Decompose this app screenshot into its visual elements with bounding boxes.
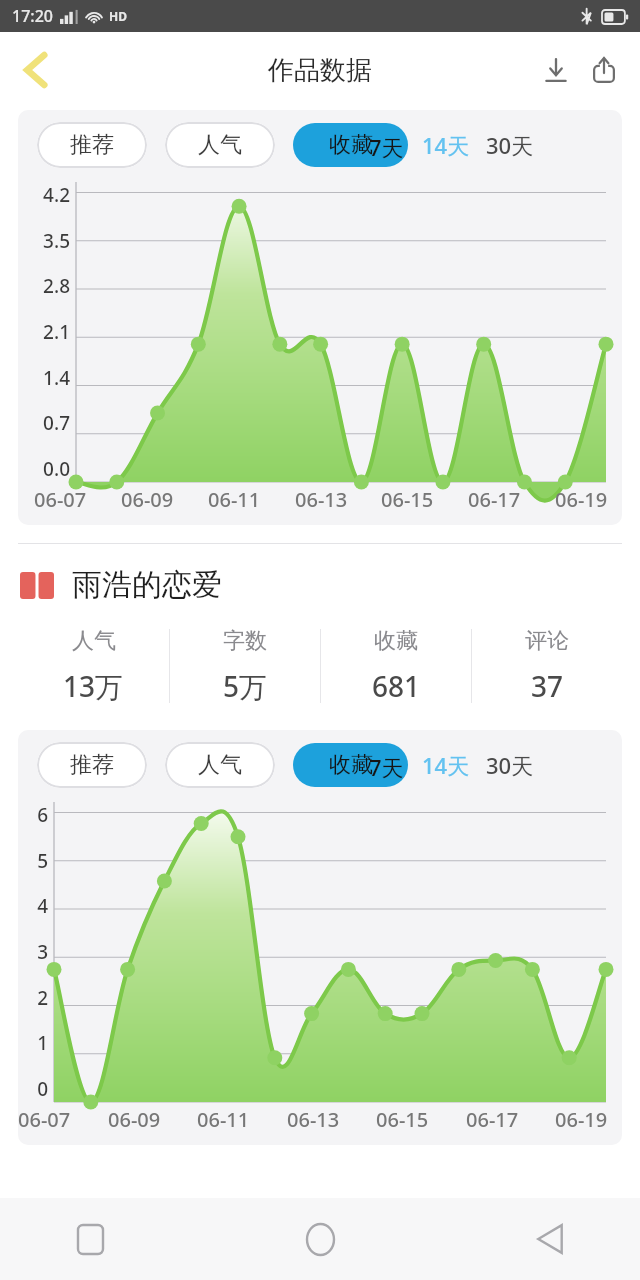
staticText: 5万 (223, 667, 268, 705)
button[interactable]: Back (520, 1209, 580, 1269)
staticText: 6 (24, 802, 48, 828)
button[interactable]: Share (580, 46, 628, 94)
staticText: 06-17 (468, 486, 521, 513)
staticText: 评论 (525, 627, 569, 655)
staticText: 推荐 (70, 131, 114, 159)
staticText: 4.2 (24, 182, 70, 208)
staticText: 1 (24, 1030, 48, 1056)
staticText: 37 (531, 667, 564, 705)
staticText: 06-11 (197, 1106, 250, 1133)
staticText: 13万 (63, 667, 124, 705)
staticText: 06-15 (381, 486, 434, 513)
button[interactable]: 7天 (369, 132, 404, 162)
staticText: 人气 (72, 627, 116, 655)
button[interactable]: 收藏 (293, 743, 408, 787)
staticText: 06-15 (376, 1106, 429, 1133)
staticText: 字数 (223, 627, 267, 655)
button[interactable]: Recents (60, 1209, 120, 1269)
staticText: 06-13 (295, 486, 348, 513)
button[interactable]: 人气 (18, 618, 169, 714)
button[interactable]: 人气 (165, 742, 275, 788)
staticText: 06-17 (466, 1106, 519, 1133)
button[interactable]: Back (8, 42, 64, 98)
button[interactable]: 7天 (369, 752, 404, 782)
staticText: 3 (24, 939, 48, 965)
staticText: 4 (24, 893, 48, 919)
button[interactable]: 14天 (422, 750, 470, 780)
staticText: 0.7 (24, 410, 70, 436)
button[interactable]: Download (532, 46, 580, 94)
button[interactable]: 字数 (170, 618, 320, 714)
staticText: 雨浩的恋爱 (72, 566, 222, 604)
staticText: 推荐 (70, 751, 114, 779)
staticText: 06-09 (121, 486, 174, 513)
staticText: 2.8 (24, 273, 70, 299)
button[interactable]: 收藏 (321, 618, 471, 714)
staticText: 06-19 (555, 1106, 608, 1133)
staticText: 收藏 (329, 751, 373, 779)
staticText: 06-09 (108, 1106, 161, 1133)
button[interactable]: Home (290, 1209, 350, 1269)
staticText: 人气 (198, 131, 242, 159)
staticText: 5 (24, 848, 48, 874)
staticText: 人气 (198, 751, 242, 779)
staticText: 3.5 (24, 228, 70, 254)
staticText: HD (109, 8, 127, 24)
button[interactable]: 30天 (486, 130, 534, 160)
button[interactable]: 14天 (422, 130, 470, 160)
staticText: 06-13 (287, 1106, 340, 1133)
staticText: 收藏 (329, 131, 373, 159)
button[interactable]: 30天 (486, 750, 534, 780)
staticText: 0 (24, 1076, 48, 1102)
staticText: 681 (372, 667, 421, 705)
staticText: 2.1 (24, 319, 70, 345)
button[interactable]: 人气 (165, 122, 275, 168)
staticText: 06-11 (208, 486, 261, 513)
button[interactable]: 评论 (472, 618, 622, 714)
button[interactable]: 收藏 (293, 123, 408, 167)
staticText: 17:20 (12, 5, 53, 27)
staticText: 收藏 (374, 627, 418, 655)
staticText: 06-19 (555, 486, 608, 513)
staticText: 06-07 (18, 1106, 71, 1133)
button[interactable]: 雨浩的恋爱 (20, 566, 640, 604)
staticText: 06-07 (34, 486, 87, 513)
staticText: 作品数据 (268, 54, 372, 87)
button[interactable]: 推荐 (37, 122, 147, 168)
staticText: 0.0 (24, 456, 70, 482)
button[interactable]: 推荐 (37, 742, 147, 788)
staticText: 1.4 (24, 365, 70, 391)
staticText: 2 (24, 985, 48, 1011)
